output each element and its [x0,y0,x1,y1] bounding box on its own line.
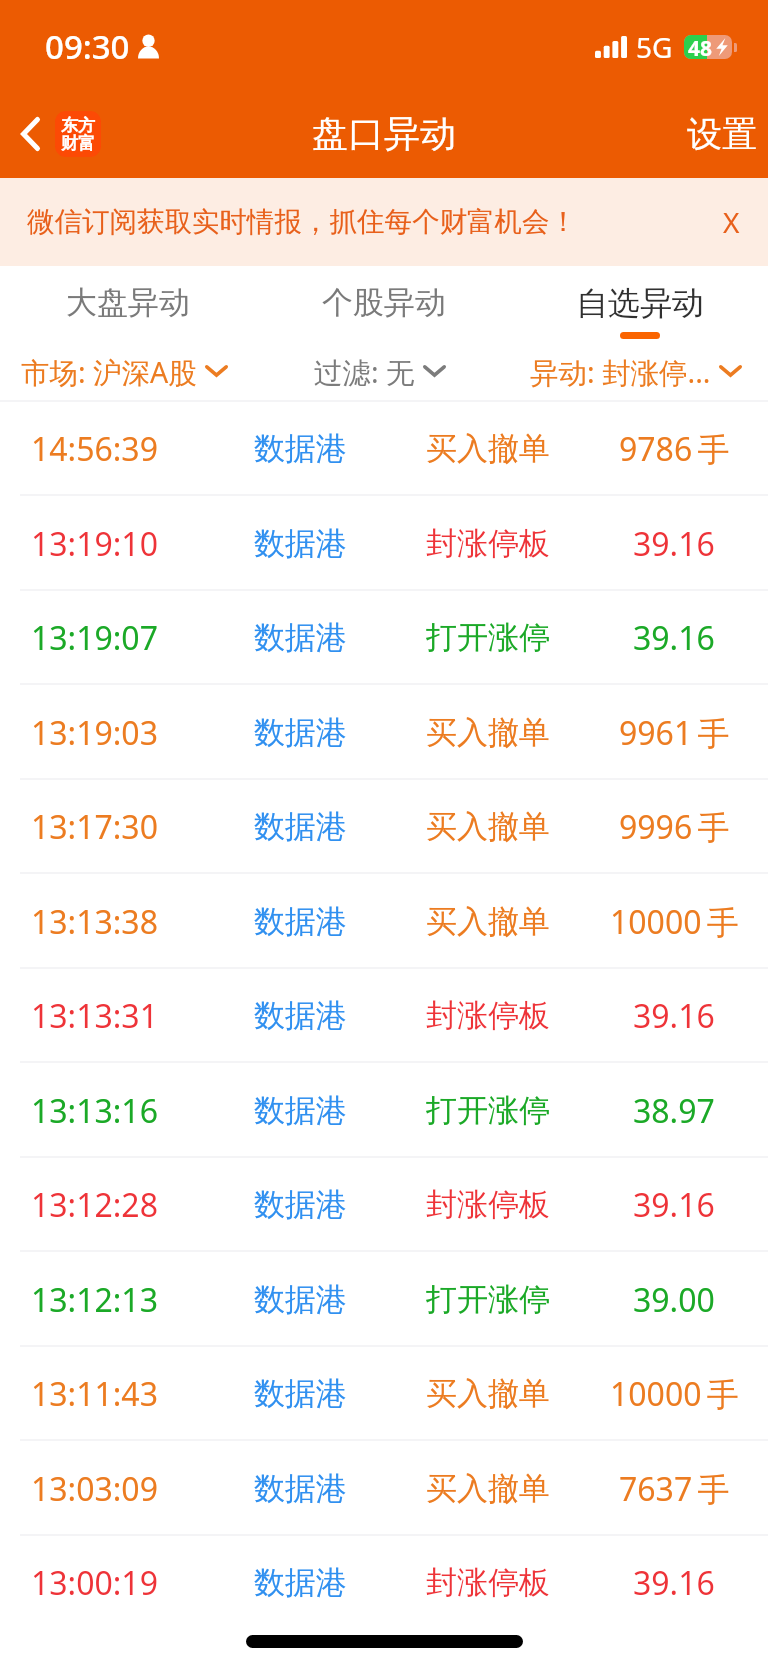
staticText: 39.16 [633,522,715,566]
staticText: 13:17:30 [31,805,158,849]
staticText: X [723,203,740,241]
staticText: 个股异动 [322,283,446,322]
button[interactable]: 自选异动 [512,266,768,345]
button[interactable]: 13:13:16 [0,1063,768,1158]
staticText: 数据港 [254,1374,347,1413]
staticText: 数据港 [254,1280,347,1319]
staticText: 数据港 [254,713,347,752]
staticText: 买入撤单 [426,429,550,468]
staticText: 盘口异动 [312,111,456,156]
staticText: 5G [636,28,673,66]
button[interactable]: 设置 [671,98,768,170]
staticText: 打开涨停 [426,618,550,657]
staticText: 数据港 [254,1563,347,1602]
button[interactable]: 返回 [0,101,109,167]
staticText: 数据港 [254,996,347,1035]
staticText: 13:11:43 [31,1372,158,1416]
staticText: 买入撤单 [426,1469,550,1508]
staticText: 打开涨停 [426,1280,550,1319]
staticText: 封涨停板 [426,996,550,1035]
staticText: 封涨停板 [426,1563,550,1602]
button[interactable]: 13:13:31 [0,968,768,1063]
staticText: 39.16 [633,994,715,1038]
staticText: 39.00 [633,1278,715,1322]
staticText: 7637 手 [619,1467,730,1511]
staticText: 打开涨停 [426,1091,550,1130]
button[interactable]: 13:00:19 [0,1535,768,1630]
button[interactable]: 13:03:09 [0,1441,768,1536]
button[interactable]: 过滤: 无 [314,345,446,400]
staticText: 13:19:03 [31,711,158,755]
staticText: 财富 [61,133,95,154]
staticText: 39.16 [633,1561,715,1605]
staticText: 13:19:10 [31,522,158,566]
staticText: 买入撤单 [426,713,550,752]
staticText: 39.16 [633,1183,715,1227]
staticText: 买入撤单 [426,902,550,941]
staticText: 数据港 [254,807,347,846]
button[interactable]: 异动: 封涨停... [530,345,742,400]
staticText: 自选异动 [576,283,704,323]
button[interactable]: 13:11:43 [0,1346,768,1441]
staticText: 10000 手 [610,1372,739,1416]
staticText: 13:12:13 [31,1278,158,1322]
staticText: 数据港 [254,902,347,941]
staticText: 13:13:38 [31,900,158,944]
staticText: 买入撤单 [426,1374,550,1413]
staticText: 过滤: 无 [314,353,415,392]
staticText: 封涨停板 [426,524,550,563]
staticText: 数据港 [254,618,347,657]
button[interactable]: 个股异动 [256,266,512,345]
staticText: 13:19:07 [31,616,158,660]
button[interactable]: 13:12:28 [0,1157,768,1252]
staticText: 异动: 封涨停... [530,353,711,392]
staticText: 数据港 [254,429,347,468]
button[interactable]: 13:13:38 [0,874,768,969]
button[interactable]: 14:56:39 [0,401,768,496]
staticText: 13:13:16 [31,1089,158,1133]
button[interactable]: 13:17:30 [0,779,768,874]
staticText: 10000 手 [610,900,739,944]
staticText: 大盘异动 [66,283,190,322]
staticText: 数据港 [254,1469,347,1508]
staticText: 数据港 [254,1091,347,1130]
button[interactable]: 市场: 沪深A股 [21,345,228,400]
staticText: 38.97 [633,1089,715,1133]
staticText: 微信订阅获取实时情报，抓住每个财富机会！ [27,205,577,240]
staticText: 数据港 [254,524,347,563]
staticText: 14:56:39 [31,427,158,471]
button[interactable]: 13:12:13 [0,1252,768,1347]
staticText: 数据港 [254,1185,347,1224]
button[interactable]: 13:19:03 [0,685,768,780]
staticText: 买入撤单 [426,807,550,846]
staticText: 13:12:28 [31,1183,158,1227]
staticText: 9961 手 [619,711,730,755]
staticText: 东方 [61,115,95,136]
staticText: 13:03:09 [31,1467,158,1511]
staticText: 市场: 沪深A股 [21,353,197,392]
staticText: 09:30 [45,24,130,69]
staticText: 13:00:19 [31,1561,158,1605]
button[interactable]: 大盘异动 [0,266,256,345]
staticText: 9786 手 [619,427,730,471]
staticText: 39.16 [633,616,715,660]
staticText: 13:13:31 [31,994,158,1038]
button[interactable]: 13:19:10 [0,496,768,591]
button[interactable]: 关闭 [701,189,768,255]
staticText: 封涨停板 [426,1185,550,1224]
staticText: 9996 手 [619,805,730,849]
staticText: 设置 [687,112,757,156]
button[interactable]: 13:19:07 [0,590,768,685]
staticText: 48 [688,34,713,58]
